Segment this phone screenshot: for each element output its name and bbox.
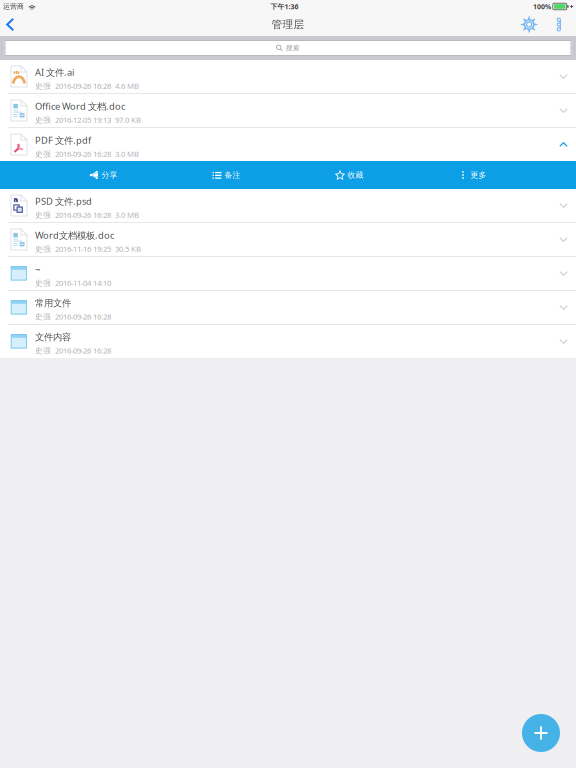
- button[interactable]: 备注: [165, 161, 288, 189]
- staticText: 史强 2016-09-26 16:28 3.0 MB: [35, 210, 139, 220]
- button[interactable]: 新建: [522, 714, 560, 752]
- staticText: 常用文件: [35, 297, 71, 309]
- staticText: 史强 2016-11-16 19:25 30.5 KB: [35, 244, 141, 254]
- button[interactable]: 返回: [0, 13, 26, 36]
- staticText: 史强 2016-11-04 14:10: [35, 278, 111, 288]
- button[interactable]: PSD 文件.psd: [0, 189, 576, 222]
- staticText: PSD 文件.psd: [35, 195, 92, 208]
- button[interactable]: 更多: [547, 13, 576, 35]
- staticText: 备注: [224, 170, 240, 180]
- staticText: AI 文件.ai: [35, 66, 74, 79]
- staticText: 100%: [533, 2, 551, 11]
- staticText: 收藏: [347, 170, 363, 180]
- button[interactable]: 常用文件: [0, 291, 576, 324]
- button[interactable]: Word文档模板.doc: [0, 223, 576, 256]
- button[interactable]: 分享: [42, 161, 165, 189]
- button[interactable]: AI 文件.ai: [0, 60, 576, 93]
- staticText: 下午1:36: [270, 2, 298, 11]
- staticText: 史强 2016-12-05 19:13 97.0 KB: [35, 115, 141, 125]
- staticText: 分享: [101, 170, 117, 180]
- button[interactable]: 搜索: [0, 36, 576, 60]
- staticText: Word文档模板.doc: [35, 229, 114, 242]
- staticText: 搜索: [286, 44, 300, 52]
- button[interactable]: 设置: [513, 13, 547, 36]
- button[interactable]: 文件内容: [0, 325, 576, 358]
- button[interactable]: PDF 文件.pdf: [0, 128, 576, 161]
- staticText: 史强 2016-09-26 16:28: [35, 345, 111, 356]
- staticText: 管理层: [271, 18, 304, 31]
- staticText: 运营商: [3, 2, 24, 11]
- staticText: 更多: [470, 170, 486, 180]
- button[interactable]: ~: [0, 257, 576, 290]
- staticText: 史强 2016-09-26 16:28: [35, 311, 111, 322]
- staticText: 史强 2016-09-26 16:28 3.0 MB: [35, 149, 139, 159]
- button[interactable]: 更多: [411, 161, 534, 189]
- staticText: PDF 文件.pdf: [35, 134, 91, 147]
- staticText: ~: [35, 263, 40, 276]
- staticText: Office Word 文档.doc: [35, 100, 125, 113]
- button[interactable]: Office Word 文档.doc: [0, 94, 576, 127]
- staticText: 文件内容: [35, 331, 71, 343]
- staticText: 史强 2016-09-26 16:28 4.6 MB: [35, 81, 139, 91]
- button[interactable]: 收藏: [288, 161, 411, 189]
